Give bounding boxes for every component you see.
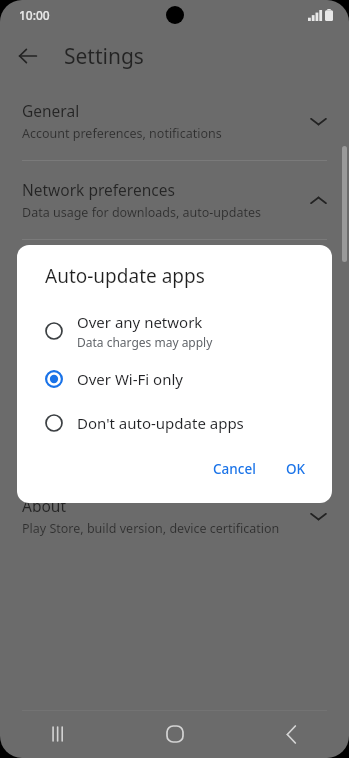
staticText: Over Wi-Fi only	[77, 369, 183, 389]
staticText: 10:00	[19, 7, 50, 23]
staticText: Auto-update apps	[22, 258, 153, 279]
button[interactable]: Don't auto-update apps	[17, 401, 332, 445]
staticText: Over Wi-Fi only	[22, 283, 111, 300]
button[interactable]: Auto-update apps	[0, 240, 349, 318]
button[interactable]: Cancel	[203, 451, 266, 487]
button[interactable]: Over Wi-Fi only	[17, 357, 332, 401]
button[interactable]: Over any network	[17, 305, 332, 357]
staticText: Settings	[64, 42, 144, 71]
button[interactable]: Back	[233, 710, 349, 758]
staticText: About	[22, 495, 66, 516]
button[interactable]: About	[0, 477, 349, 555]
button[interactable]: Home	[117, 710, 233, 758]
staticText: General	[22, 100, 80, 121]
staticText: Cancel	[213, 460, 256, 478]
button[interactable]: Recent apps	[0, 710, 117, 758]
staticText: Network preferences	[22, 179, 175, 200]
button[interactable]: Family	[0, 398, 349, 476]
staticText: Account preferences, notifications	[22, 125, 222, 142]
button[interactable]: Network preferences	[0, 161, 349, 239]
button[interactable]: OK	[276, 451, 316, 487]
staticText: OK	[286, 460, 306, 478]
staticText: Play Store, build version, device certif…	[22, 520, 280, 537]
staticText: Authentication	[22, 337, 130, 358]
staticText: Data usage for downloads, auto-updates	[22, 204, 262, 221]
staticText: Family	[22, 416, 70, 437]
button[interactable]: General	[0, 82, 349, 160]
staticText: Don't auto-update apps	[77, 413, 244, 433]
staticText: Fingerprint, purchase authentication	[22, 362, 238, 379]
button[interactable]: Authentication	[0, 319, 349, 397]
staticText: Over any network	[77, 312, 203, 332]
button[interactable]: Back	[8, 36, 48, 76]
staticText: Data charges may apply	[77, 334, 213, 350]
staticText: Auto-update apps	[45, 263, 205, 289]
